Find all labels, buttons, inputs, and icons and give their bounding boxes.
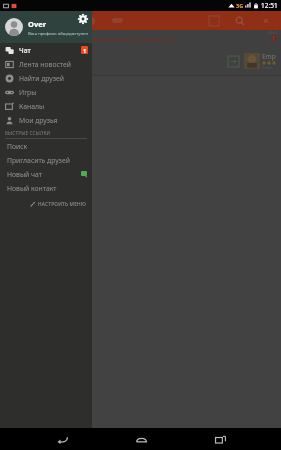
- staticText: Over: [28, 19, 47, 29]
- button[interactable]: Лента новостей: [0, 57, 92, 71]
- staticText: Поиск: [7, 142, 88, 151]
- button[interactable]: Games: [104, 11, 130, 30]
- staticText: ожение Tango! Это отличное приложения дл…: [4, 35, 268, 42]
- button[interactable]: Back: [49, 428, 75, 450]
- button[interactable]: ns: [0, 46, 281, 76]
- button[interactable]: Search: [227, 11, 253, 30]
- staticText: Чат: [19, 46, 81, 55]
- button[interactable]: Channels: [201, 11, 227, 30]
- staticText: НАСТРОИТЬ МЕНЮ: [38, 201, 86, 208]
- staticText: ns: [4, 57, 12, 66]
- button[interactable]: Notifications: [253, 11, 279, 30]
- button[interactable]: Start chat: [24, 108, 46, 130]
- button[interactable]: Recent apps: [207, 428, 233, 450]
- staticText: Игры: [19, 88, 88, 97]
- button[interactable]: Home: [128, 428, 154, 450]
- staticText: Каналы: [19, 102, 88, 111]
- button[interactable]: Settings: [78, 14, 88, 24]
- staticText: Спонс: [262, 65, 274, 70]
- button[interactable]: Chats: [26, 11, 52, 30]
- staticText: Начать чат: [18, 92, 65, 104]
- button[interactable]: Новый чат: [0, 167, 92, 181]
- button[interactable]: Пригласить друзей: [0, 153, 92, 167]
- button[interactable]: Open promo: [228, 56, 239, 67]
- staticText: 12:51: [267, 30, 278, 36]
- staticText: Новый чат: [7, 170, 81, 179]
- button[interactable]: Find friends: [78, 11, 104, 30]
- staticText: БЫСТРЫЕ ССЫЛКИ: [5, 130, 51, 136]
- staticText: Emp: [262, 52, 276, 61]
- button[interactable]: Игры: [0, 85, 92, 99]
- staticText: Найти друзей: [19, 74, 88, 83]
- staticText: 3G: [236, 2, 244, 9]
- button[interactable]: НАСТРОИТЬ МЕНЮ: [0, 198, 92, 210]
- button[interactable]: Чат: [0, 43, 92, 57]
- staticText: Новый контакт: [7, 184, 88, 193]
- staticText: 1: [83, 47, 87, 54]
- staticText: Лента новостей: [19, 60, 88, 69]
- button[interactable]: Мои друзья: [0, 113, 92, 127]
- button[interactable]: Open navigation drawer: [0, 11, 26, 30]
- button[interactable]: Найти друзей: [0, 71, 92, 85]
- staticText: 12:51: [261, 1, 278, 10]
- staticText: Ваш профиль общедоступен: [28, 30, 89, 36]
- staticText: !: [273, 35, 275, 41]
- button[interactable]: Новый контакт: [0, 181, 92, 195]
- staticText: Пригласить друзей: [7, 156, 88, 165]
- button[interactable]: Каналы: [0, 99, 92, 113]
- button[interactable]: Поиск: [0, 139, 92, 153]
- staticText: Мои друзья: [19, 116, 88, 125]
